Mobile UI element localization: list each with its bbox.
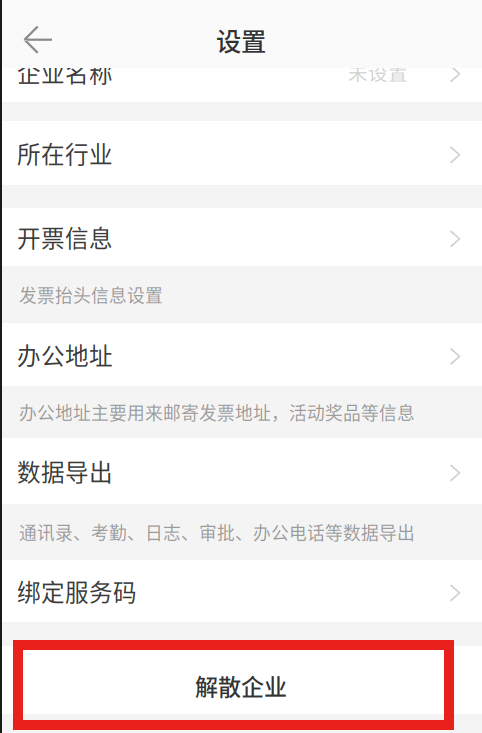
staticText: 办公地址主要用来邮寄发票地址，活动奖品等信息 — [19, 399, 415, 425]
staticText: 绑定服务码 — [17, 574, 137, 608]
staticText: 所在行业 — [17, 136, 113, 170]
staticText: 办公地址 — [17, 337, 113, 372]
button[interactable]: 所在行业 — [0, 121, 482, 185]
staticText: 开票信息 — [17, 220, 113, 254]
button[interactable]: 办公地址 — [0, 323, 482, 386]
button[interactable]: Back — [0, 12, 66, 68]
staticText: 通讯录、考勤、日志、审批、办公电话等数据导出 — [19, 519, 415, 545]
button[interactable]: 绑定服务码 — [0, 560, 482, 622]
staticText: 设置 — [216, 22, 266, 58]
staticText: 解散企业 — [195, 669, 287, 702]
staticText: 企业名称 — [17, 55, 113, 89]
button[interactable]: 开票信息 — [0, 208, 482, 266]
staticText: 数据导出 — [17, 454, 113, 488]
button[interactable]: 解散企业 — [0, 646, 482, 714]
staticText: 发票抬头信息设置 — [19, 282, 163, 307]
staticText: 未设置 — [348, 58, 408, 86]
button[interactable]: 企业名称 — [0, 0, 482, 102]
button[interactable]: 数据导出 — [0, 438, 482, 504]
